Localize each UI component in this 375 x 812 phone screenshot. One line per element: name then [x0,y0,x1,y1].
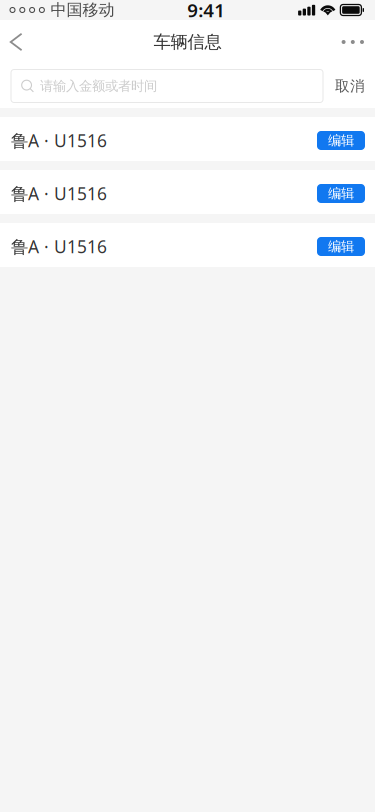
staticText: 编辑 [328,132,354,149]
button[interactable]: 编辑 [317,131,365,150]
staticText: 鲁A · U1516 [11,129,107,152]
staticText: 车辆信息 [153,31,221,53]
button[interactable]: 返回 [0,20,37,64]
staticText: 取消 [335,77,365,95]
staticText: 编辑 [328,185,354,202]
staticText: 编辑 [328,238,354,255]
staticText: 中国移动 [50,0,114,20]
staticText: 9:41 [187,0,225,22]
button[interactable]: 更多 [328,20,375,64]
button[interactable]: 编辑 [317,184,365,203]
button[interactable]: 取消 [323,64,375,108]
staticText: 请输入金额或者时间 [40,78,157,94]
button[interactable]: 编辑 [317,237,365,256]
staticText: 鲁A · U1516 [11,182,107,205]
staticText: 鲁A · U1516 [11,235,107,258]
button[interactable]: 请输入金额或者时间 [11,69,323,102]
